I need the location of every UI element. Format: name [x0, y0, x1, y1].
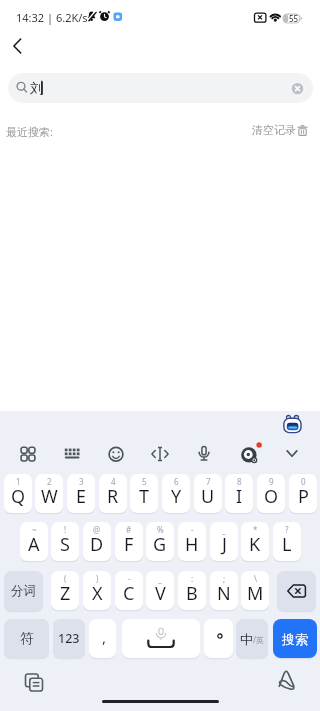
staticText: C [123, 581, 135, 606]
staticText: F [124, 532, 134, 557]
button[interactable]: 6 [162, 474, 190, 513]
staticText: 4 [111, 476, 116, 487]
button[interactable]: ) [83, 571, 111, 610]
button[interactable]: 3 [67, 474, 95, 513]
button[interactable]: * [241, 522, 269, 561]
button[interactable] [57, 439, 87, 469]
staticText: 清空记录 [252, 123, 296, 137]
button[interactable]: ! [51, 522, 79, 561]
staticText: : [191, 573, 194, 584]
staticText: 1 [16, 476, 21, 487]
staticText: D [90, 532, 104, 557]
button[interactable]: - [115, 571, 143, 610]
staticText: N [217, 581, 231, 606]
staticText: % [157, 524, 164, 535]
staticText: 刘 [30, 80, 44, 97]
button[interactable]: 符 [4, 619, 49, 658]
button[interactable] [101, 439, 131, 469]
button[interactable]: 2 [35, 474, 63, 513]
button[interactable]: 1 [4, 474, 32, 513]
button[interactable]: 清空记录 [252, 123, 309, 137]
staticText: Q [11, 484, 26, 509]
button[interactable] [13, 439, 43, 469]
button[interactable]: 刘 [8, 73, 313, 103]
button[interactable]: - [178, 522, 206, 561]
staticText: 搜索 [282, 631, 308, 647]
staticText: 7 [206, 476, 211, 487]
staticText: I [236, 484, 243, 509]
button[interactable]: \ [241, 571, 269, 610]
button[interactable]: ( [51, 571, 79, 610]
button[interactable] [234, 440, 264, 470]
staticText: - [191, 524, 194, 535]
button[interactable]: 4 [99, 474, 127, 513]
button[interactable]: ? [273, 522, 301, 561]
staticText: 8 [237, 476, 242, 487]
button[interactable]: : [178, 571, 206, 610]
staticText: 分词 [11, 583, 36, 599]
staticText: 6 [174, 476, 179, 487]
staticText: 5 [142, 476, 147, 487]
button[interactable] [277, 571, 316, 611]
staticText: E [76, 484, 87, 509]
staticText: _ [222, 524, 226, 535]
button[interactable]: 123 [53, 619, 85, 658]
staticText: U [201, 484, 215, 509]
staticText: 14:32 | 6.2K/s [16, 10, 88, 25]
button[interactable]: 中 [236, 619, 268, 658]
staticText: ~ [32, 524, 37, 535]
button[interactable]: _ [210, 522, 238, 561]
button[interactable] [271, 666, 302, 697]
button[interactable]: 5 [130, 474, 158, 513]
button[interactable] [204, 619, 233, 658]
button[interactable]: 8 [225, 474, 253, 513]
button[interactable]: @ [83, 522, 111, 561]
button[interactable]: 7 [194, 474, 222, 513]
button[interactable] [8, 34, 32, 58]
button[interactable] [189, 439, 219, 469]
staticText: T [139, 484, 150, 509]
button[interactable]: ; [210, 571, 238, 610]
staticText: 123 [58, 630, 80, 647]
staticText: 3 [79, 476, 84, 487]
button[interactable]: # [115, 522, 143, 561]
staticText: W [41, 484, 58, 509]
staticText: R [107, 484, 119, 509]
staticText: 0 [301, 476, 306, 487]
staticText: \ [254, 573, 257, 584]
button[interactable]: 分词 [4, 571, 43, 611]
staticText: @ [93, 524, 101, 535]
button[interactable]: , [89, 619, 116, 658]
staticText: V [155, 581, 166, 606]
staticText: 55 [289, 13, 299, 24]
staticText: ( [64, 573, 67, 584]
staticText: 2 [47, 476, 52, 487]
staticText: # [126, 524, 132, 535]
button[interactable] [277, 439, 307, 469]
staticText: ) [96, 573, 99, 584]
button[interactable]: 0 [289, 474, 317, 513]
button[interactable] [122, 619, 200, 658]
button[interactable] [145, 439, 175, 469]
staticText: - [128, 573, 131, 584]
staticText: K [249, 532, 261, 557]
button[interactable]: 搜索 [273, 619, 317, 658]
staticText: G [153, 532, 167, 557]
button[interactable]: ~ [20, 522, 48, 561]
staticText: L [282, 532, 292, 557]
staticText: * [253, 524, 258, 535]
staticText: 中 [240, 631, 253, 647]
button[interactable]: _ [146, 571, 174, 610]
button[interactable] [17, 668, 49, 698]
staticText: S [60, 532, 70, 557]
button[interactable]: 9 [257, 474, 285, 513]
button[interactable]: % [146, 522, 174, 561]
staticText: P [298, 484, 309, 509]
staticText: X [92, 581, 103, 606]
staticText: 符 [20, 630, 34, 647]
staticText: ? [285, 524, 289, 535]
staticText: O [264, 484, 279, 509]
staticText: 9 [269, 476, 274, 487]
staticText: J [222, 532, 227, 557]
staticText: A [28, 532, 40, 557]
